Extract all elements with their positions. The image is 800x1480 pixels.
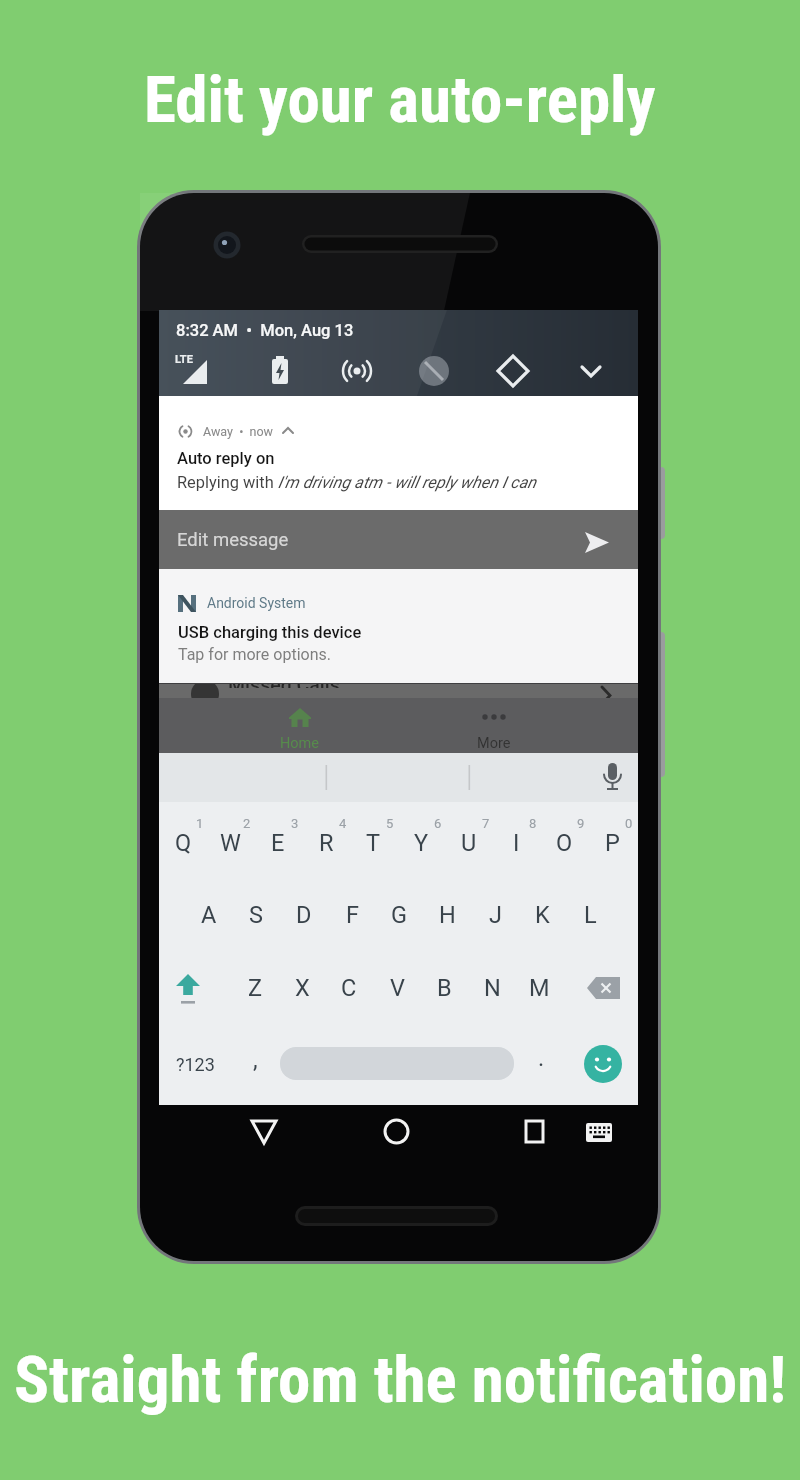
staticText: M [529, 974, 550, 1002]
staticText: L [584, 901, 597, 929]
staticText: Home [280, 735, 320, 752]
staticText: Straight from the notification! [14, 1342, 787, 1418]
button[interactable] [172, 972, 204, 1006]
staticText: 5 [386, 816, 394, 831]
staticText: 8 [529, 816, 537, 831]
staticText: E [271, 829, 285, 857]
staticText: G [391, 901, 408, 929]
staticText: LTE [175, 353, 193, 366]
button[interactable] [229, 1108, 299, 1156]
staticText: H [439, 901, 456, 929]
staticText: Auto reply on [177, 449, 275, 468]
button[interactable] [518, 1035, 564, 1093]
staticText: , [253, 1046, 258, 1074]
staticText: Missed Calls [228, 684, 340, 688]
staticText: More [477, 735, 511, 752]
staticText: T [366, 829, 381, 857]
button[interactable] [541, 814, 587, 874]
button[interactable] [519, 885, 565, 945]
staticText: 7 [482, 816, 490, 831]
button[interactable]: Missed Calls [159, 684, 638, 698]
staticText: C [341, 974, 357, 1002]
staticText: 9 [577, 816, 585, 831]
staticText: U [461, 829, 477, 857]
button[interactable] [424, 885, 470, 945]
button[interactable] [493, 814, 539, 874]
button[interactable] [255, 814, 301, 874]
button[interactable] [159, 345, 638, 396]
staticText: D [296, 901, 312, 929]
staticText: J [489, 901, 502, 929]
staticText: . [538, 1044, 545, 1072]
button[interactable] [350, 814, 396, 874]
button[interactable] [446, 814, 492, 874]
button[interactable] [587, 977, 620, 999]
staticText: 1 [196, 816, 204, 831]
staticText: A [201, 901, 217, 929]
button[interactable] [172, 1035, 218, 1093]
staticText: X [295, 974, 310, 1002]
staticText: Y [414, 829, 429, 857]
staticText: B [437, 974, 452, 1002]
staticText: W [220, 829, 241, 857]
staticText: P [605, 829, 620, 857]
button[interactable] [459, 708, 529, 753]
button[interactable] [233, 885, 279, 945]
button[interactable] [361, 1108, 431, 1156]
button[interactable] [207, 814, 253, 874]
button[interactable] [585, 532, 609, 553]
staticText: N [484, 974, 501, 1002]
staticText: Edit message [177, 529, 289, 551]
button[interactable] [186, 885, 232, 945]
button[interactable] [376, 885, 422, 945]
button[interactable] [232, 958, 278, 1018]
staticText: Tap for more options. [178, 645, 331, 664]
staticText: Replying with I'm driving atm - will rep… [177, 473, 537, 492]
button[interactable] [326, 958, 372, 1018]
button[interactable] [160, 814, 206, 874]
button[interactable] [279, 958, 325, 1018]
button[interactable] [469, 958, 515, 1018]
button[interactable] [159, 510, 638, 569]
button[interactable] [280, 1047, 514, 1080]
button[interactable] [589, 758, 633, 798]
button[interactable] [374, 958, 420, 1018]
button[interactable] [303, 814, 349, 874]
button[interactable] [572, 1108, 628, 1156]
button[interactable] [421, 958, 467, 1018]
button[interactable] [281, 885, 327, 945]
staticText: S [249, 901, 263, 929]
staticText: 6 [434, 816, 442, 831]
staticText: K [535, 901, 550, 929]
button[interactable] [232, 1035, 278, 1093]
staticText: Edit your auto-reply [144, 62, 656, 138]
staticText: 3 [291, 816, 299, 831]
button[interactable] [329, 885, 375, 945]
staticText: 0 [625, 816, 633, 831]
staticText: 8:32 AM • Mon, Aug 13 [176, 321, 354, 340]
staticText: Android System [207, 595, 306, 611]
staticText: I [513, 829, 520, 857]
button[interactable] [589, 814, 635, 874]
staticText: Away • now [203, 424, 274, 439]
staticText: O [556, 829, 573, 857]
button[interactable] [159, 569, 638, 684]
button[interactable] [398, 814, 444, 874]
staticText: Q [175, 829, 192, 857]
staticText: Z [248, 974, 263, 1002]
button[interactable] [516, 958, 562, 1018]
button[interactable] [472, 885, 518, 945]
button[interactable] [264, 708, 334, 753]
button[interactable] [499, 1108, 569, 1156]
staticText: V [390, 974, 405, 1002]
button[interactable] [159, 396, 638, 510]
staticText: R [319, 829, 334, 857]
staticText: USB charging this device [178, 623, 362, 642]
staticText: 2 [243, 816, 251, 831]
staticText: F [346, 901, 359, 929]
button[interactable] [567, 885, 613, 945]
staticText: ?123 [176, 1054, 215, 1075]
button[interactable] [584, 1045, 622, 1083]
staticText: 4 [339, 816, 347, 831]
